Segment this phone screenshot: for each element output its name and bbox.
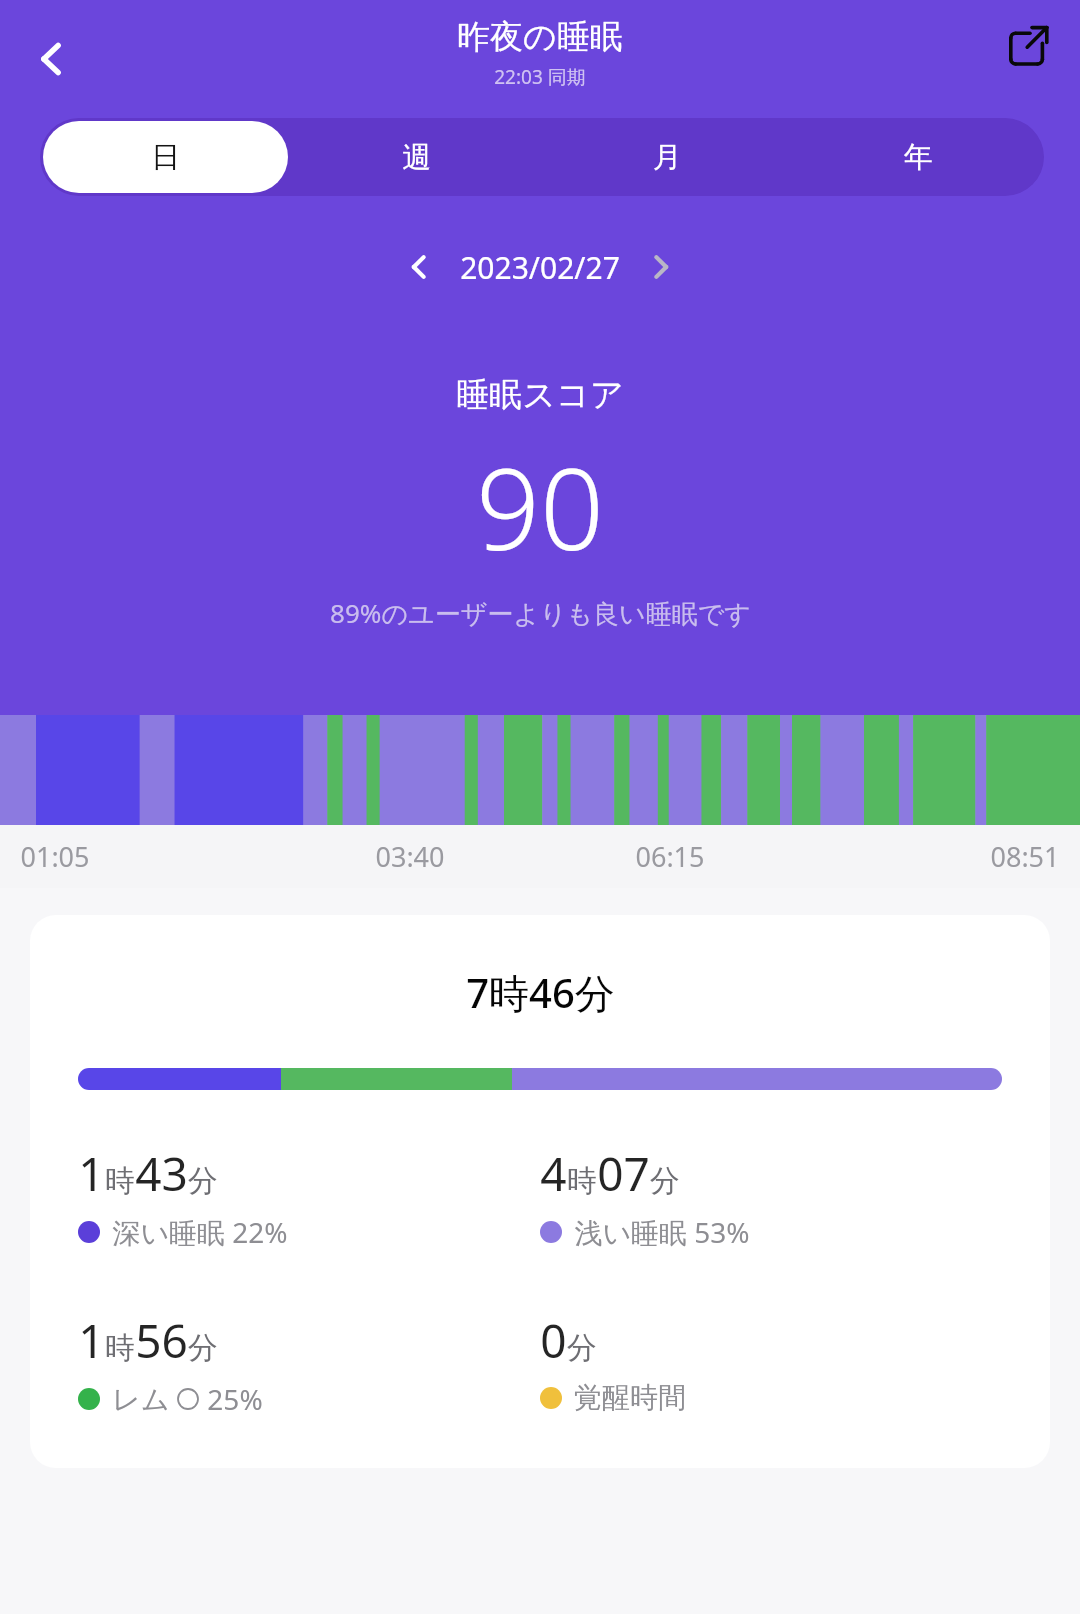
staticText: 時 [105, 1162, 135, 1200]
staticText: 4 [540, 1142, 567, 1205]
staticText: 時 [105, 1329, 135, 1367]
staticText: 0 [540, 1309, 567, 1372]
staticText: 深い睡眠 22% [112, 1213, 288, 1251]
staticText: 睡眠スコア [456, 374, 624, 416]
staticText: 2023/02/27 [460, 247, 620, 288]
button[interactable]: Next day [632, 238, 690, 296]
staticText: 覚醒時間 [574, 1380, 686, 1415]
staticText: 03:40 [375, 838, 445, 875]
staticText: 1 [78, 1142, 105, 1205]
staticText: 43 [135, 1142, 188, 1205]
staticText: 時 [567, 1162, 597, 1200]
staticText: 分 [188, 1329, 218, 1367]
staticText: 56 [135, 1309, 188, 1372]
staticText: 25% [207, 1380, 263, 1418]
staticText: 1 [78, 1309, 105, 1372]
staticText: 07 [597, 1142, 650, 1205]
staticText: 分 [650, 1162, 680, 1200]
button[interactable]: 月 [545, 121, 790, 193]
staticText: 年 [904, 139, 933, 176]
button[interactable]: 7時46分 [30, 915, 1050, 1468]
staticText: レム [112, 1382, 170, 1417]
staticText: 分 [188, 1162, 218, 1200]
button[interactable]: 日 [43, 121, 288, 193]
staticText: 浅い睡眠 53% [574, 1213, 750, 1251]
staticText: 22:03 同期 [494, 64, 586, 90]
staticText: 89%のユーザーよりも良い睡眠です [330, 595, 751, 631]
staticText: 7時46分 [466, 965, 615, 1020]
button[interactable]: Back [14, 21, 90, 97]
button[interactable]: 年 [796, 121, 1041, 193]
staticText: 昨夜の睡眠 [457, 16, 623, 58]
staticText: 08:51 [990, 838, 1060, 875]
staticText: 週 [402, 139, 431, 176]
button[interactable]: Previous day [390, 238, 448, 296]
staticText: 月 [653, 139, 682, 176]
staticText: 06:15 [635, 838, 705, 875]
staticText: 90 [476, 430, 604, 583]
staticText: 01:05 [20, 838, 90, 875]
staticText: 日 [151, 139, 180, 176]
button[interactable]: Share [990, 8, 1066, 84]
staticText: 分 [567, 1329, 597, 1367]
button[interactable]: 週 [294, 121, 539, 193]
